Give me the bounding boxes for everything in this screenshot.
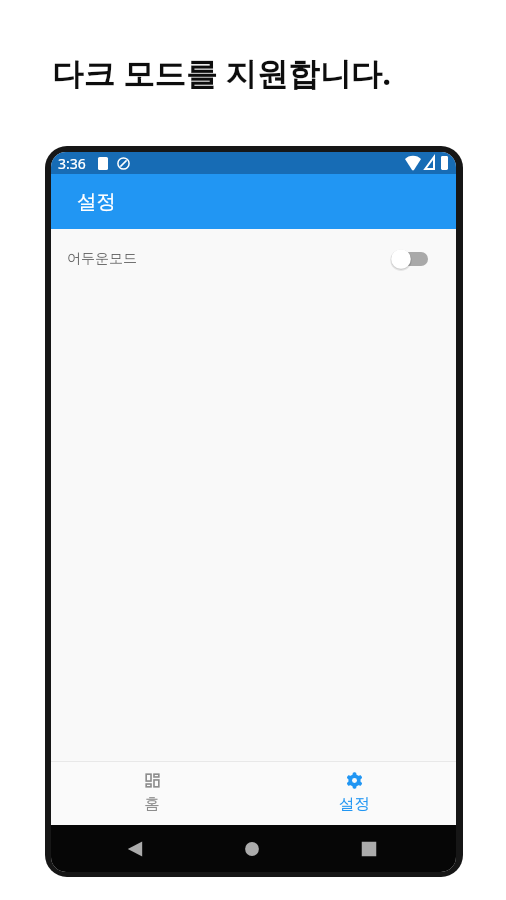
button[interactable]: Recent apps: [335, 825, 403, 872]
button[interactable]: Back: [101, 825, 169, 872]
staticText: 어두운모드: [67, 250, 137, 268]
staticText: 설정: [339, 794, 370, 814]
staticText: 설정: [77, 189, 116, 214]
button[interactable]: 홈: [51, 762, 253, 825]
button[interactable]: Home: [218, 825, 286, 872]
button[interactable]: 설정: [253, 762, 456, 825]
staticText: 3:36: [58, 154, 86, 173]
staticText: 다크 모드를 지원합니다.: [52, 51, 392, 94]
button[interactable]: 어두운모드: [51, 229, 456, 288]
staticText: 홈: [144, 794, 160, 814]
